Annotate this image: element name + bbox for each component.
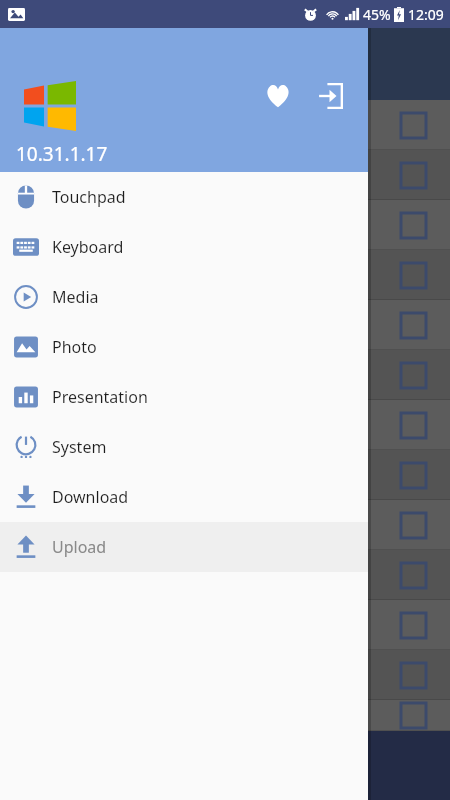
button[interactable]: Presentation	[0, 372, 368, 422]
button[interactable]	[0, 650, 450, 700]
button[interactable]: Log in	[310, 76, 350, 116]
button[interactable]	[0, 550, 450, 600]
staticText: 12:09	[408, 5, 444, 24]
staticText: System	[52, 436, 107, 458]
staticText: Touchpad	[52, 186, 126, 208]
button[interactable]	[0, 100, 450, 150]
staticText: Download	[52, 486, 129, 508]
staticText: Photo	[52, 336, 97, 358]
staticText: Upload	[52, 536, 107, 558]
button[interactable]	[0, 150, 450, 200]
button[interactable]: Download	[0, 472, 368, 522]
button[interactable]: Upload	[0, 522, 368, 572]
button[interactable]: Keyboard	[0, 222, 368, 272]
button[interactable]: Touchpad	[0, 172, 368, 222]
staticText: Media	[52, 286, 99, 308]
button[interactable]	[0, 250, 450, 300]
staticText: 10.31.1.17	[16, 141, 108, 167]
button[interactable]	[0, 200, 450, 250]
staticText: Keyboard	[52, 236, 124, 258]
staticText: 10.31.1.17	[16, 169, 79, 187]
button[interactable]: System	[0, 422, 368, 472]
button[interactable]	[0, 700, 450, 731]
button[interactable]: Media	[0, 272, 368, 322]
staticText: 45%	[363, 5, 391, 24]
button[interactable]	[0, 600, 450, 650]
button[interactable]	[0, 350, 450, 400]
button[interactable]	[0, 300, 450, 350]
button[interactable]: Favorite	[258, 76, 298, 116]
button[interactable]: Photo	[0, 322, 368, 372]
button[interactable]	[0, 500, 450, 550]
button[interactable]	[0, 400, 450, 450]
staticText: Presentation	[52, 386, 148, 408]
button[interactable]	[0, 450, 450, 500]
